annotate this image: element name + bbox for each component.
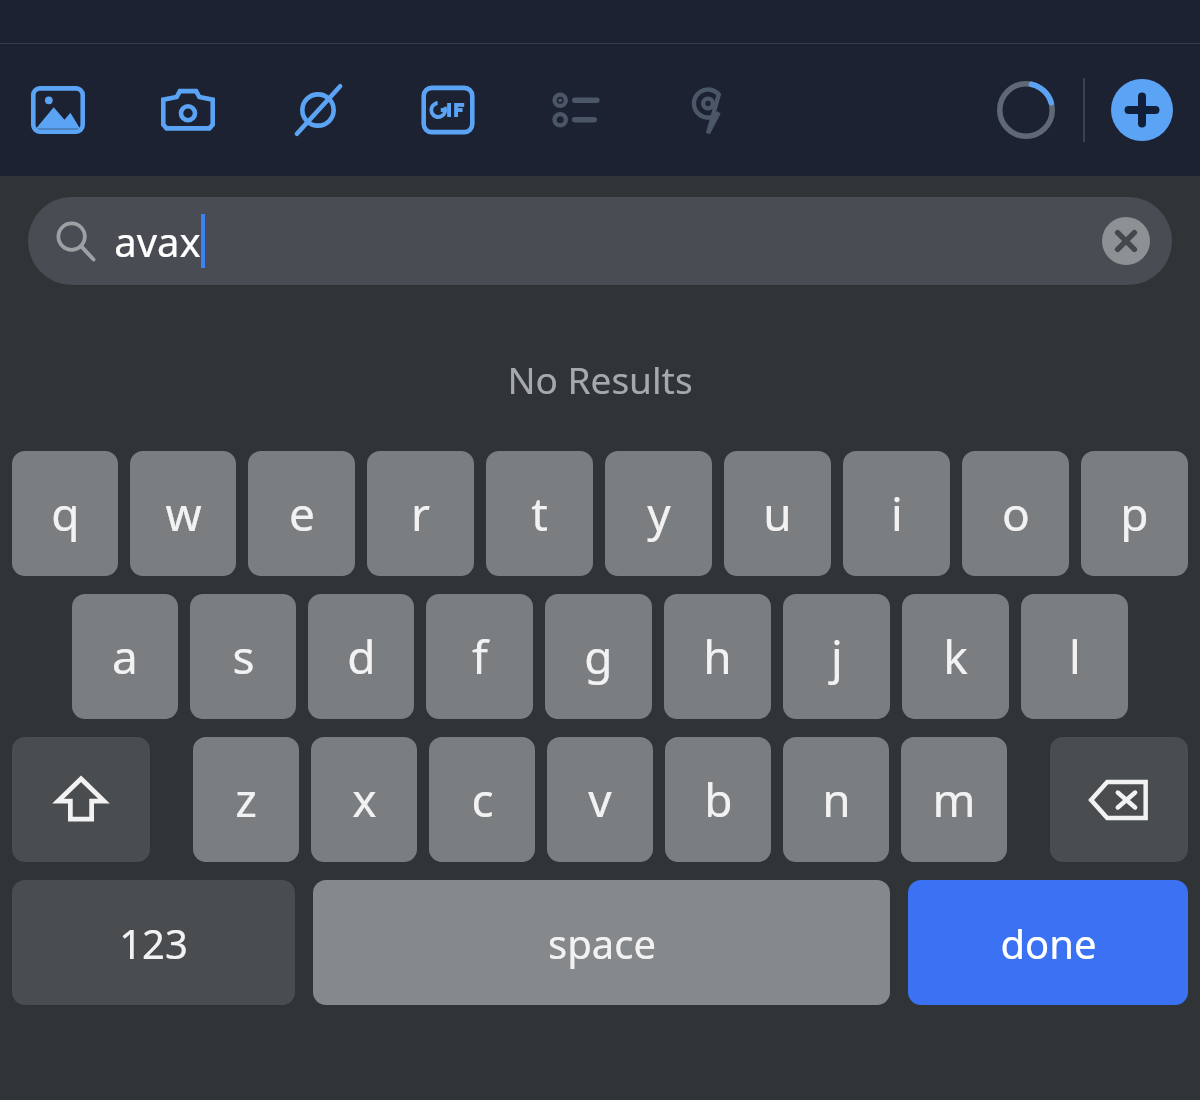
button[interactable]: f bbox=[426, 594, 533, 719]
button[interactable]: z bbox=[193, 737, 299, 862]
button[interactable]: i bbox=[843, 451, 950, 576]
staticText: space bbox=[548, 916, 656, 970]
staticText: i bbox=[891, 482, 903, 545]
button[interactable]: s bbox=[190, 594, 296, 719]
button[interactable]: Camera bbox=[154, 76, 222, 144]
staticText: q bbox=[51, 482, 80, 545]
button[interactable]: e bbox=[248, 451, 355, 576]
staticText: c bbox=[471, 768, 494, 831]
staticText: o bbox=[1002, 482, 1030, 545]
button[interactable]: Compose bbox=[284, 76, 352, 144]
staticText: f bbox=[472, 625, 488, 688]
button[interactable]: a bbox=[72, 594, 178, 719]
staticText: m bbox=[932, 768, 976, 831]
button[interactable]: Poll bbox=[544, 76, 612, 144]
staticText: done bbox=[1000, 916, 1097, 970]
staticText: n bbox=[822, 768, 851, 831]
staticText: k bbox=[943, 625, 968, 688]
staticText: g bbox=[584, 625, 613, 688]
button[interactable]: y bbox=[605, 451, 712, 576]
button[interactable]: u bbox=[724, 451, 831, 576]
staticText: y bbox=[647, 482, 671, 545]
staticText: b bbox=[704, 768, 733, 831]
button[interactable]: w bbox=[130, 451, 236, 576]
button[interactable]: o bbox=[962, 451, 1069, 576]
button[interactable]: l bbox=[1021, 594, 1128, 719]
staticText: l bbox=[1069, 625, 1081, 688]
button[interactable]: j bbox=[783, 594, 890, 719]
button[interactable]: Clear search bbox=[1102, 217, 1150, 265]
button[interactable]: GIF bbox=[414, 76, 482, 144]
button[interactable]: v bbox=[547, 737, 653, 862]
button[interactable]: Shift bbox=[12, 737, 150, 862]
staticText: avax bbox=[114, 214, 201, 268]
staticText: 123 bbox=[119, 916, 188, 970]
button[interactable]: New post bbox=[1111, 79, 1173, 141]
staticText: p bbox=[1120, 482, 1149, 545]
button[interactable]: r bbox=[367, 451, 474, 576]
staticText: d bbox=[347, 625, 376, 688]
button[interactable]: Progress bbox=[991, 75, 1061, 145]
button[interactable]: t bbox=[486, 451, 593, 576]
button[interactable]: Location bbox=[674, 76, 742, 144]
button[interactable]: Backspace bbox=[1050, 737, 1188, 862]
button[interactable]: g bbox=[545, 594, 652, 719]
staticText: No Results bbox=[507, 354, 693, 404]
button[interactable]: c bbox=[429, 737, 535, 862]
button[interactable]: d bbox=[308, 594, 414, 719]
button[interactable]: p bbox=[1081, 451, 1188, 576]
staticText: w bbox=[165, 482, 202, 545]
button[interactable]: n bbox=[783, 737, 889, 862]
button[interactable]: avax bbox=[28, 197, 1172, 285]
staticText: v bbox=[588, 768, 612, 831]
staticText: z bbox=[235, 768, 257, 831]
staticText: h bbox=[703, 625, 732, 688]
button[interactable]: Add photo bbox=[24, 76, 92, 144]
button[interactable]: x bbox=[311, 737, 417, 862]
button[interactable]: 123 bbox=[12, 880, 295, 1005]
staticText: t bbox=[531, 482, 548, 545]
button[interactable]: k bbox=[902, 594, 1009, 719]
staticText: j bbox=[831, 625, 843, 688]
button[interactable]: q bbox=[12, 451, 118, 576]
staticText: a bbox=[112, 625, 138, 688]
button[interactable]: space bbox=[313, 880, 890, 1005]
button[interactable]: b bbox=[665, 737, 771, 862]
staticText: e bbox=[289, 482, 315, 545]
button[interactable]: m bbox=[901, 737, 1007, 862]
staticText: r bbox=[411, 482, 430, 545]
button[interactable]: done bbox=[908, 880, 1188, 1005]
button[interactable]: h bbox=[664, 594, 771, 719]
staticText: s bbox=[232, 625, 255, 688]
staticText: u bbox=[763, 482, 792, 545]
staticText: x bbox=[352, 768, 377, 831]
